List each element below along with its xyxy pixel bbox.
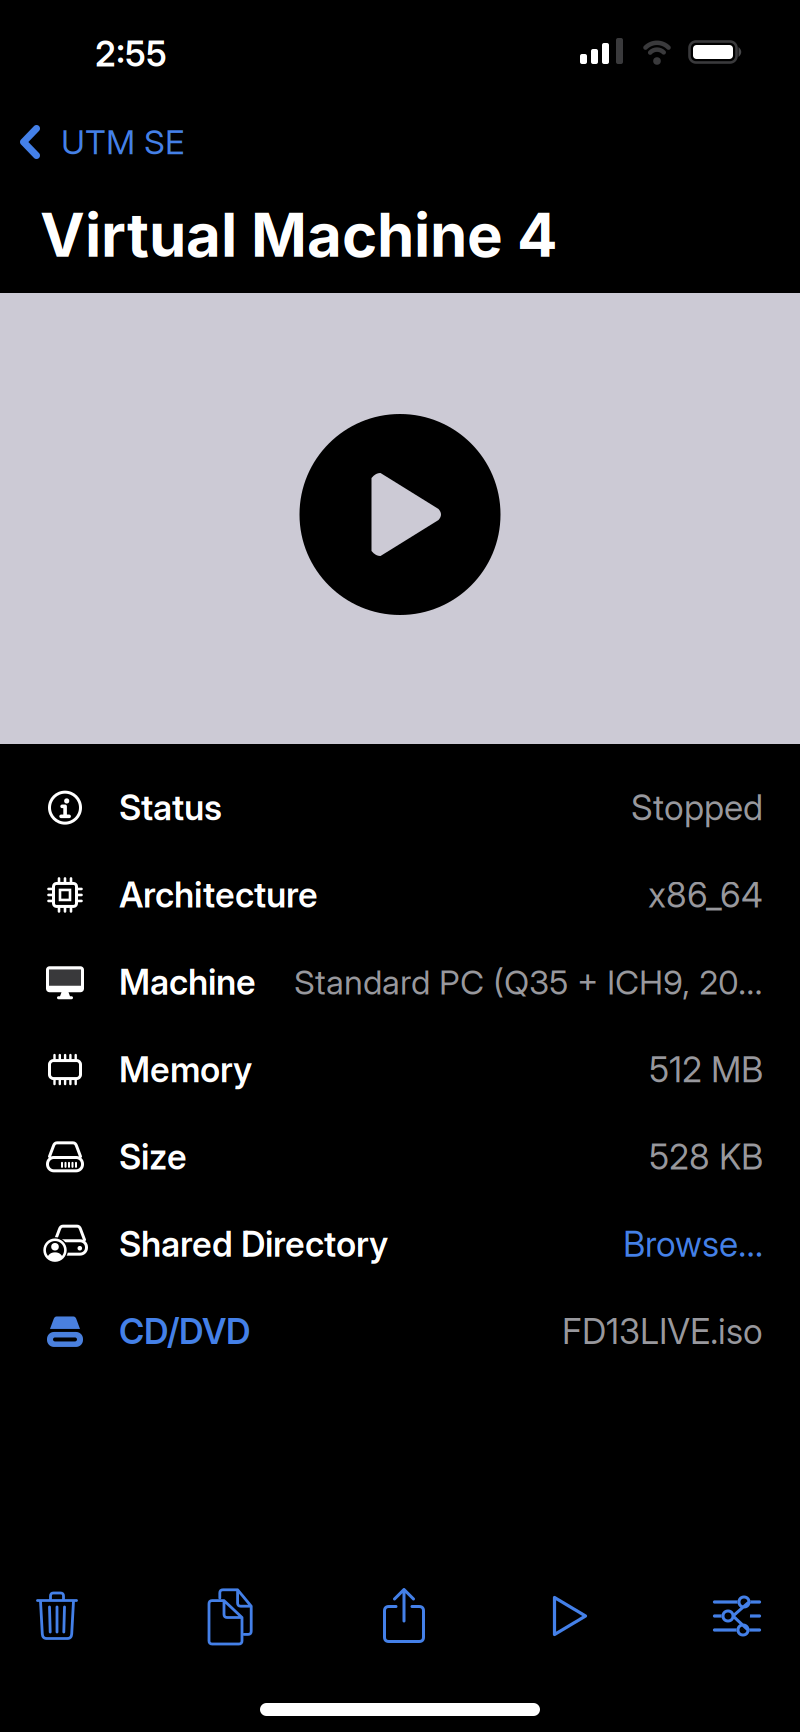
button[interactable]: Run — [299, 414, 500, 615]
button[interactable]: Delete — [2, 1568, 112, 1664]
button[interactable]: Size — [0, 1113, 800, 1200]
staticText: x86_64 — [648, 874, 763, 915]
button[interactable]: UTM SE — [20, 120, 185, 164]
staticText: Memory — [119, 1049, 252, 1090]
button[interactable]: Share — [349, 1567, 459, 1663]
staticText: 2:55 — [95, 34, 167, 74]
button[interactable]: Memory — [0, 1026, 800, 1113]
button[interactable]: Machine — [0, 939, 800, 1026]
button[interactable]: Shared Directory — [0, 1200, 800, 1288]
button[interactable]: CD/DVD — [0, 1288, 800, 1375]
button[interactable]: Edit configuration — [682, 1568, 792, 1664]
staticText: Virtual Machine 4 — [40, 200, 558, 270]
staticText: 528 KB — [649, 1136, 763, 1177]
staticText: Stopped — [631, 787, 763, 828]
staticText: Architecture — [119, 874, 318, 915]
staticText: CD/DVD — [119, 1311, 250, 1352]
staticText: 512 MB — [649, 1049, 763, 1090]
staticText: Browse… — [623, 1224, 763, 1265]
button[interactable]: Clone — [174, 1568, 284, 1664]
button[interactable]: Run — [515, 1568, 625, 1664]
staticText: Shared Directory — [119, 1224, 388, 1265]
staticText: Standard PC (Q35 + ICH9, 20… — [294, 963, 763, 1002]
staticText: Size — [119, 1136, 187, 1177]
staticText: Status — [119, 787, 222, 828]
button[interactable]: Architecture — [0, 851, 800, 939]
staticText: UTM SE — [61, 122, 185, 162]
button[interactable]: Status — [0, 764, 800, 851]
staticText: FD13LIVE.iso — [562, 1311, 763, 1352]
staticText: Machine — [119, 962, 256, 1003]
